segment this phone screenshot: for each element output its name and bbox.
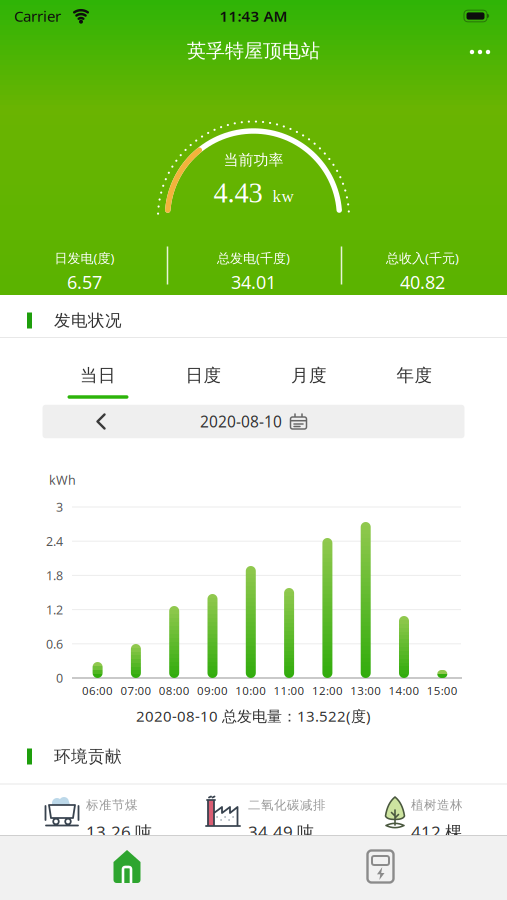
- staticText: 2020-08-10: [200, 411, 282, 432]
- staticText: 3: [56, 498, 63, 515]
- button[interactable]: 当日: [63, 355, 133, 395]
- staticText: 月度: [291, 364, 327, 386]
- button[interactable]: 日度: [168, 355, 238, 395]
- staticText: 0.6: [46, 635, 63, 652]
- staticText: 1.2: [46, 601, 63, 618]
- staticText: 环境贡献: [54, 746, 122, 767]
- staticText: 34.01: [231, 270, 276, 294]
- button[interactable]: More: [462, 37, 498, 67]
- staticText: 0: [56, 669, 63, 686]
- staticText: 标准节煤: [86, 797, 138, 813]
- button[interactable]: 年度: [379, 355, 449, 395]
- staticText: kw: [272, 187, 293, 206]
- staticText: 34.49 吨: [248, 820, 314, 844]
- button[interactable]: Devices: [340, 838, 420, 894]
- staticText: 1.8: [46, 567, 63, 584]
- staticText: 发电状况: [54, 310, 122, 331]
- staticText: 日度: [185, 364, 221, 386]
- staticText: 2.4: [46, 533, 63, 550]
- staticText: 年度: [396, 364, 432, 386]
- button[interactable]: Home: [87, 838, 167, 894]
- staticText: 10:00: [235, 683, 266, 698]
- staticText: 13.26 吨: [86, 820, 152, 844]
- staticText: kWh: [49, 471, 76, 488]
- staticText: 11:43 AM: [219, 6, 287, 26]
- staticText: 14:00: [388, 683, 419, 698]
- staticText: 4.43: [213, 177, 262, 209]
- staticText: Carrier: [14, 6, 61, 26]
- staticText: 09:00: [197, 683, 228, 698]
- staticText: 2020-08-10 总发电量：13.522(度): [136, 706, 371, 726]
- staticText: 412 棵: [411, 820, 462, 844]
- staticText: 当前功率: [223, 151, 283, 169]
- button[interactable]: Choose date: [200, 411, 307, 432]
- staticText: 6.57: [67, 270, 102, 294]
- staticText: 40.82: [400, 270, 445, 294]
- staticText: 二氧化碳减排: [248, 797, 326, 813]
- staticText: 总发电(千度): [217, 249, 290, 267]
- button[interactable]: Previous day: [93, 410, 109, 432]
- staticText: 英孚特屋顶电站: [187, 39, 320, 63]
- staticText: 13:00: [350, 683, 381, 698]
- staticText: 总收入(千元): [386, 249, 459, 267]
- button[interactable]: 月度: [274, 355, 344, 395]
- staticText: 06:00: [82, 683, 113, 698]
- staticText: 植树造林: [411, 797, 463, 813]
- staticText: 08:00: [159, 683, 190, 698]
- staticText: 12:00: [312, 683, 343, 698]
- staticText: 日发电(度): [54, 249, 114, 267]
- staticText: 07:00: [120, 683, 151, 698]
- staticText: 15:00: [427, 683, 458, 698]
- staticText: 11:00: [274, 683, 305, 698]
- staticText: 当日: [80, 364, 116, 386]
